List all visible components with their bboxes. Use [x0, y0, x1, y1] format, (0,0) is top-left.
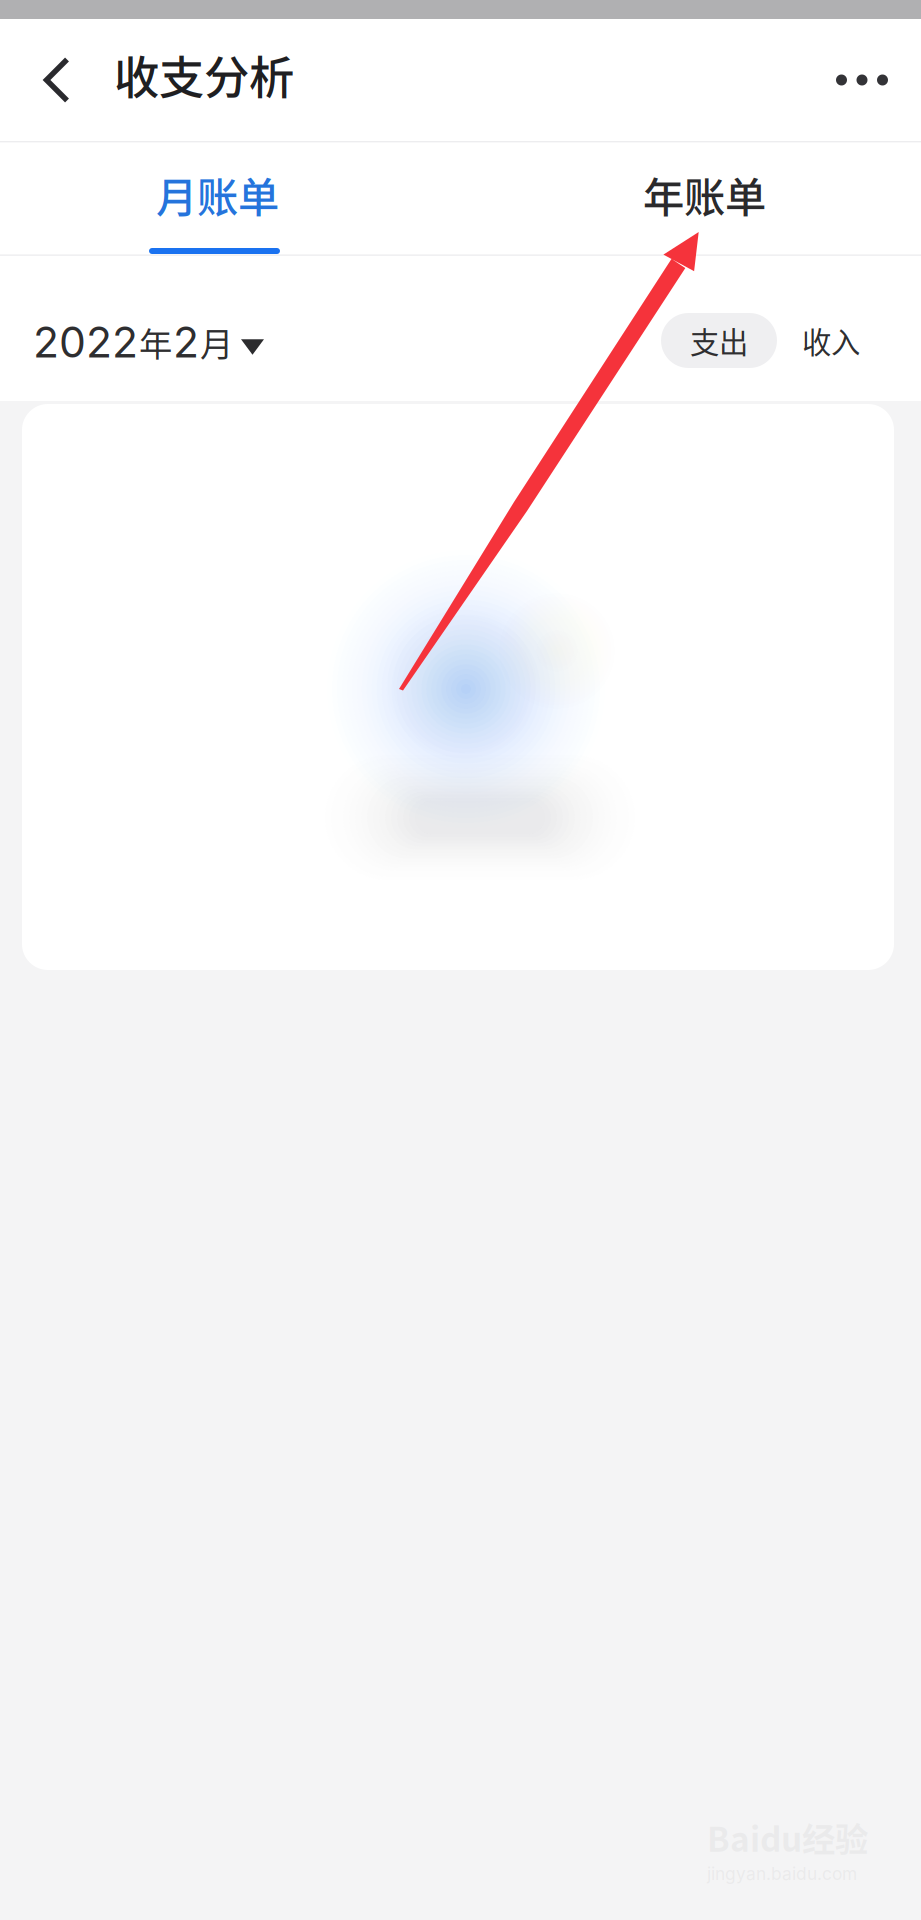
staticText: 2022	[33, 316, 138, 368]
staticText: 年	[139, 318, 172, 366]
staticText: 月账单	[156, 165, 279, 224]
staticText: Baidu经验	[707, 1813, 868, 1861]
staticText: 支出	[690, 319, 748, 362]
button[interactable]: 年账单	[487, 138, 921, 251]
staticText: 年账单	[643, 165, 766, 224]
staticText: jingyan.baidu.com	[707, 1863, 857, 1884]
staticText: 收入	[802, 319, 860, 362]
button[interactable]: 收入	[788, 313, 874, 368]
staticText: 月	[200, 318, 233, 366]
button[interactable]: 支出	[661, 313, 777, 368]
button[interactable]: 2022	[0, 298, 298, 386]
staticText: 收支分析	[114, 42, 294, 108]
button[interactable]: 月账单	[0, 138, 435, 251]
button[interactable]: Back	[16, 28, 98, 132]
staticText: 2	[173, 316, 199, 368]
button[interactable]: More options	[807, 28, 917, 132]
